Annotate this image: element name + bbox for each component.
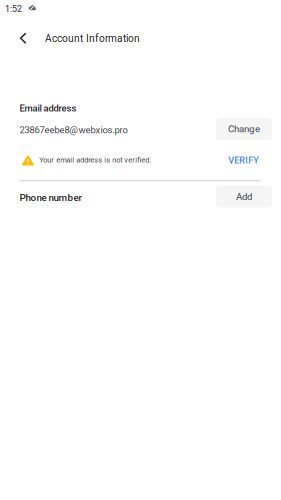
staticText: VERIFY: [228, 155, 259, 166]
button[interactable]: Change: [216, 118, 272, 140]
button[interactable]: Add: [216, 186, 272, 208]
staticText: Your email address is not verified.: [39, 156, 151, 164]
staticText: Email address: [20, 103, 77, 114]
staticText: 23867eebe8@webxios.pro: [20, 124, 128, 135]
staticText: 1:52: [5, 4, 22, 14]
staticText: Phone number: [20, 192, 82, 203]
button[interactable]: VERIFY: [223, 151, 265, 169]
staticText: Add: [236, 191, 252, 202]
button[interactable]: Back: [9, 24, 37, 52]
staticText: Change: [228, 123, 260, 135]
staticText: Account Information: [45, 33, 140, 45]
